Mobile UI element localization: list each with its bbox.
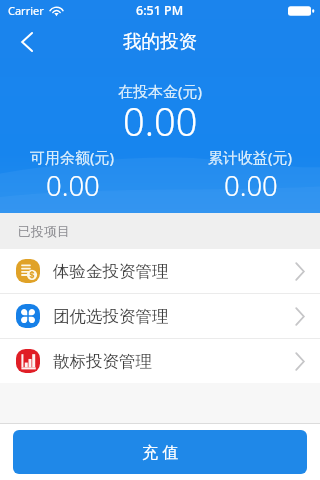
staticText: 6:51 PM [136, 2, 184, 19]
staticText: 我的投资 [123, 30, 197, 53]
button[interactable]: Back [0, 21, 54, 65]
button[interactable]: 体验金投资管理 [0, 249, 320, 293]
staticText: Carrier [8, 3, 44, 18]
staticText: 0.00 [123, 95, 198, 147]
button[interactable]: 团优选投资管理 [0, 294, 320, 338]
staticText: 累计收益(元) [208, 147, 293, 167]
staticText: 0.00 [224, 167, 278, 204]
button[interactable]: 散标投资管理 [0, 339, 320, 383]
staticText: 体验金投资管理 [53, 261, 169, 282]
staticText: 充 值 [142, 441, 179, 463]
staticText: 已投项目 [18, 223, 70, 239]
staticText: 0.00 [46, 167, 100, 204]
staticText: 团优选投资管理 [53, 306, 169, 327]
button[interactable]: 充 值 [13, 430, 307, 474]
staticText: 在投本金(元) [118, 81, 203, 101]
staticText: 可用余额(元) [30, 147, 115, 167]
staticText: 散标投资管理 [53, 351, 152, 372]
